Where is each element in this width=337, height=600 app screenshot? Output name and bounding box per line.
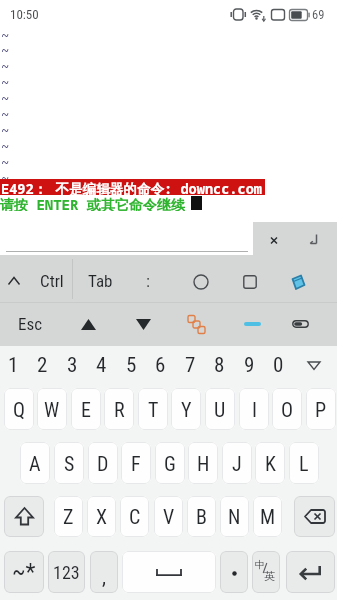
- button[interactable]: 123: [48, 551, 85, 593]
- button[interactable]: 7: [180, 352, 200, 378]
- button[interactable]: O: [272, 388, 302, 430]
- staticText: :: [146, 271, 150, 291]
- staticText: 中: [255, 558, 265, 571]
- button[interactable]: [259, 224, 289, 260]
- staticText: W: [44, 398, 60, 421]
- staticText: S: [64, 452, 75, 475]
- button[interactable]: Q: [4, 388, 34, 430]
- button[interactable]: I: [239, 388, 269, 430]
- staticText: K: [265, 452, 276, 475]
- staticText: ~: [1, 26, 10, 42]
- staticText: 2: [37, 353, 48, 378]
- button[interactable]: G: [155, 442, 185, 484]
- button[interactable]: H: [188, 442, 218, 484]
- staticText: 0: [273, 353, 284, 378]
- button[interactable]: [4, 496, 44, 537]
- button[interactable]: 9: [239, 352, 259, 378]
- button[interactable]: D: [88, 442, 118, 484]
- button[interactable]: 6: [150, 352, 170, 378]
- button[interactable]: [302, 353, 326, 377]
- button[interactable]: F: [121, 442, 151, 484]
- staticText: 3: [67, 353, 78, 378]
- button[interactable]: ,: [90, 551, 118, 593]
- button[interactable]: 中: [252, 551, 280, 593]
- staticText: ~: [1, 57, 10, 73]
- button[interactable]: [286, 551, 335, 593]
- staticText: ~: [1, 89, 10, 105]
- staticText: 1: [8, 353, 19, 378]
- staticText: X: [96, 505, 108, 528]
- staticText: O: [281, 398, 294, 421]
- staticText: ~: [1, 169, 10, 185]
- staticText: E: [81, 398, 91, 421]
- button[interactable]: 1: [3, 352, 23, 378]
- button[interactable]: M: [253, 496, 282, 537]
- staticText: ~: [1, 105, 10, 121]
- staticText: 7: [185, 353, 196, 378]
- button[interactable]: [76, 306, 100, 342]
- button[interactable]: B: [187, 496, 216, 537]
- button[interactable]: [296, 224, 332, 260]
- staticText: F: [131, 452, 141, 475]
- button[interactable]: Tab: [84, 263, 116, 299]
- staticText: ~: [1, 121, 10, 137]
- staticText: Q: [13, 398, 26, 421]
- button[interactable]: [184, 311, 208, 337]
- button[interactable]: T: [138, 388, 168, 430]
- button[interactable]: V: [154, 496, 183, 537]
- button[interactable]: [188, 269, 213, 294]
- button[interactable]: [240, 310, 265, 338]
- button[interactable]: A: [20, 442, 50, 484]
- button[interactable]: Y: [171, 388, 201, 430]
- button[interactable]: 2: [32, 352, 52, 378]
- button[interactable]: [122, 551, 216, 593]
- button[interactable]: [131, 306, 155, 342]
- button[interactable]: [220, 551, 248, 593]
- button[interactable]: 8: [209, 352, 229, 378]
- button[interactable]: C: [120, 496, 149, 537]
- button[interactable]: :: [136, 263, 160, 299]
- button[interactable]: Z: [54, 496, 83, 537]
- button[interactable]: Esc: [12, 306, 48, 342]
- staticText: ~: [1, 41, 10, 57]
- button[interactable]: X: [87, 496, 116, 537]
- button[interactable]: E: [71, 388, 101, 430]
- button[interactable]: 5: [121, 352, 141, 378]
- staticText: E492： 不是编辑器的命令: downcc.com: [1, 179, 262, 195]
- staticText: B: [196, 505, 207, 528]
- staticText: H: [197, 452, 210, 475]
- button[interactable]: L: [289, 442, 319, 484]
- button[interactable]: P: [306, 388, 336, 430]
- staticText: V: [163, 505, 175, 528]
- staticText: 请按 ENTER 或其它命令继续: [0, 195, 185, 211]
- staticText: 9: [244, 353, 255, 378]
- button[interactable]: [287, 269, 312, 294]
- button[interactable]: S: [54, 442, 84, 484]
- staticText: 69: [312, 7, 325, 22]
- staticText: G: [164, 452, 176, 475]
- button[interactable]: [2, 267, 26, 295]
- staticText: Esc: [18, 314, 43, 334]
- staticText: 8: [214, 353, 225, 378]
- button[interactable]: 3: [62, 352, 82, 378]
- staticText: 10:50: [10, 7, 39, 22]
- button[interactable]: W: [37, 388, 67, 430]
- button[interactable]: K: [255, 442, 285, 484]
- button[interactable]: 0: [268, 352, 288, 378]
- button[interactable]: [237, 269, 262, 294]
- button[interactable]: [288, 310, 313, 338]
- staticText: ~*: [12, 559, 36, 586]
- button[interactable]: U: [205, 388, 235, 430]
- staticText: ~: [1, 73, 10, 89]
- staticText: A: [29, 452, 41, 475]
- button[interactable]: R: [104, 388, 134, 430]
- button[interactable]: 4: [91, 352, 111, 378]
- button[interactable]: J: [222, 442, 252, 484]
- staticText: ~: [1, 137, 10, 153]
- button[interactable]: [294, 496, 335, 537]
- staticText: 5: [126, 353, 137, 378]
- staticText: Tab: [88, 271, 113, 291]
- button[interactable]: N: [220, 496, 249, 537]
- button[interactable]: ~*: [4, 551, 44, 593]
- button[interactable]: Ctrl: [36, 263, 68, 299]
